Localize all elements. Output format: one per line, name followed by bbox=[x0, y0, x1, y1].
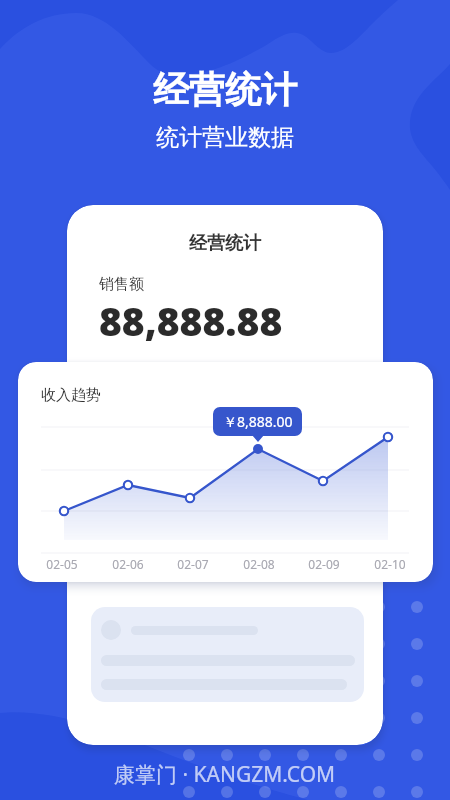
staticText: 02-09 bbox=[304, 556, 344, 572]
staticText: 销售额 bbox=[99, 275, 144, 294]
staticText: 收入趋势 bbox=[41, 386, 101, 405]
staticText: 02-10 bbox=[370, 556, 410, 572]
staticText: ￥8,888.00 bbox=[223, 412, 293, 431]
staticText: 02-07 bbox=[173, 556, 213, 572]
staticText: 统计营业数据 bbox=[156, 123, 294, 152]
staticText: 02-06 bbox=[108, 556, 148, 572]
staticText: 02-05 bbox=[42, 556, 82, 572]
staticText: 02-08 bbox=[239, 556, 279, 572]
staticText: 康掌门 · KANGZM.COM bbox=[114, 760, 336, 789]
staticText: 88,888.88 bbox=[99, 294, 283, 347]
staticText: 经营统计 bbox=[189, 232, 261, 255]
staticText: 经营统计 bbox=[153, 67, 297, 112]
